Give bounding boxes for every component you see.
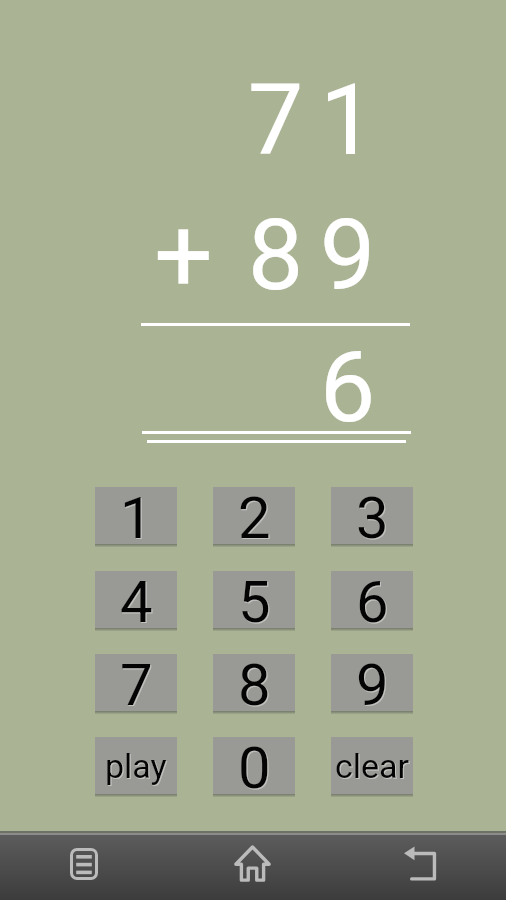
- staticText: clear: [335, 746, 410, 786]
- staticText: 4: [121, 569, 154, 626]
- button[interactable]: play: [95, 737, 177, 797]
- staticText: 8: [239, 652, 272, 709]
- button[interactable]: 7: [95, 654, 177, 714]
- staticText: 1: [120, 484, 153, 541]
- button[interactable]: 9: [331, 654, 413, 714]
- staticText: 7: [120, 651, 153, 708]
- staticText: 3: [357, 485, 390, 542]
- staticText: 4: [120, 568, 153, 625]
- button[interactable]: 1: [95, 487, 177, 547]
- staticText: 2: [239, 485, 272, 542]
- button[interactable]: Back: [337, 831, 506, 896]
- staticText: 6: [357, 569, 390, 626]
- button[interactable]: 3: [331, 487, 413, 547]
- staticText: 71: [0, 62, 392, 178]
- staticText: 6: [0, 329, 392, 445]
- button[interactable]: 4: [95, 571, 177, 631]
- button[interactable]: 6: [331, 571, 413, 631]
- staticText: 5: [239, 569, 272, 626]
- staticText: +: [154, 195, 214, 317]
- staticText: 0: [239, 735, 272, 792]
- staticText: 6: [356, 568, 389, 625]
- button[interactable]: 0: [213, 737, 295, 797]
- staticText: 89: [0, 197, 392, 313]
- button[interactable]: 8: [213, 654, 295, 714]
- staticText: 2: [238, 484, 271, 541]
- staticText: 9: [357, 652, 390, 709]
- staticText: 5: [238, 568, 271, 625]
- staticText: play: [105, 746, 167, 786]
- button[interactable]: Home: [168, 831, 337, 896]
- staticText: 9: [356, 651, 389, 708]
- button[interactable]: Menu: [0, 831, 168, 896]
- staticText: 7: [121, 652, 154, 709]
- staticText: play: [106, 747, 168, 787]
- staticText: 8: [238, 651, 271, 708]
- button[interactable]: 5: [213, 571, 295, 631]
- staticText: 3: [356, 484, 389, 541]
- button[interactable]: clear: [331, 737, 413, 797]
- staticText: 1: [121, 485, 154, 542]
- staticText: 0: [238, 734, 271, 791]
- staticText: clear: [336, 747, 411, 787]
- button[interactable]: 2: [213, 487, 295, 547]
